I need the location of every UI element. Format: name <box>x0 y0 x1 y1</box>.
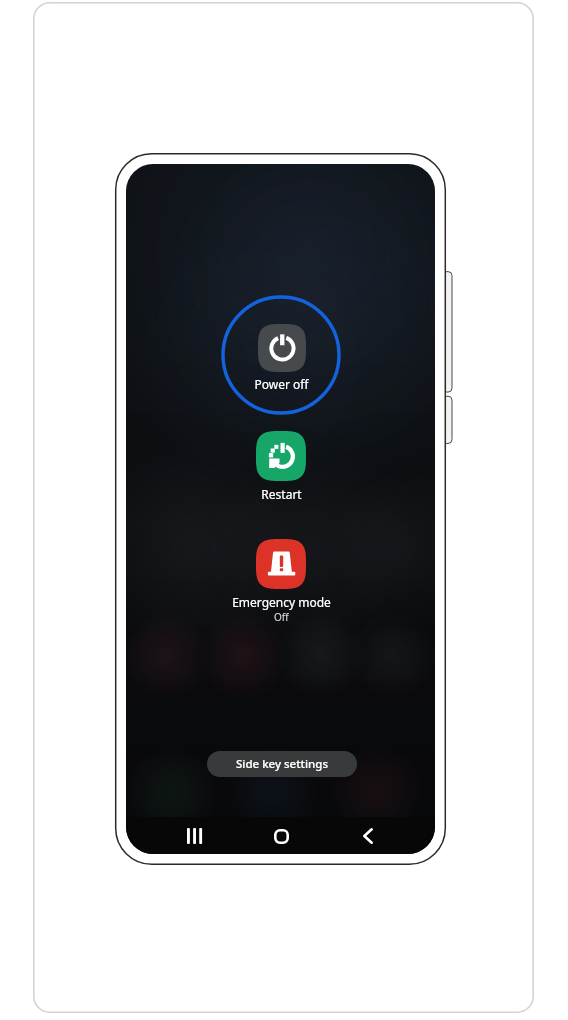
button[interactable]: Power off <box>258 324 306 372</box>
button[interactable]: Recent apps <box>176 818 212 854</box>
button[interactable]: Emergency mode <box>201 539 361 624</box>
button[interactable]: Restart <box>216 431 346 502</box>
staticText: Side key settings <box>236 756 329 772</box>
staticText: Emergency mode <box>232 594 331 610</box>
staticText: Power off <box>254 376 309 392</box>
button[interactable]: Side key settings <box>207 751 357 777</box>
staticText: Restart <box>261 486 302 502</box>
staticText: Off <box>274 610 289 624</box>
button[interactable]: Back <box>350 818 386 854</box>
button[interactable]: Home <box>263 818 299 854</box>
